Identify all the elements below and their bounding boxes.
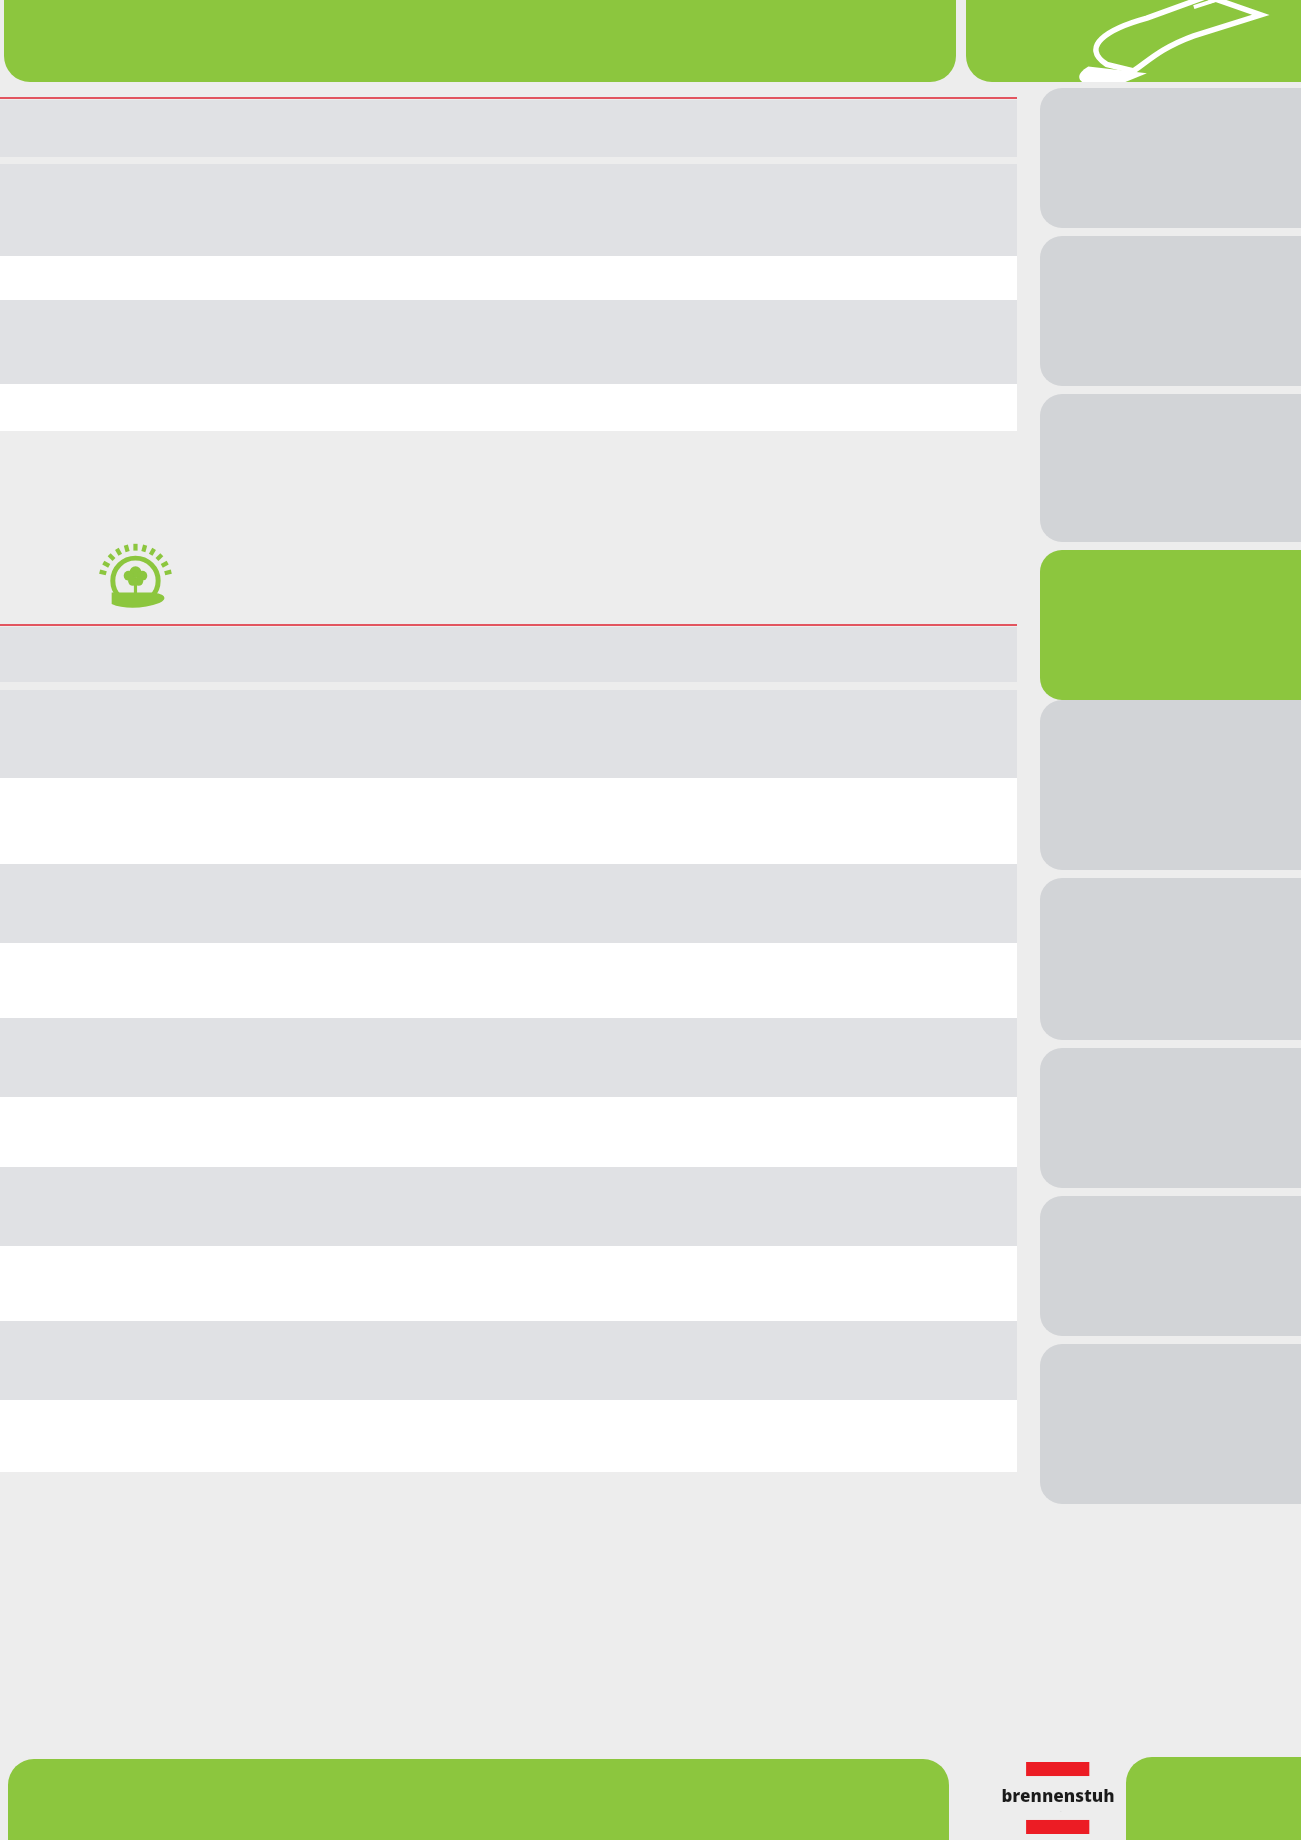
button[interactable] xyxy=(8,1759,949,1840)
button[interactable]: brennenstuhl xyxy=(1000,1762,1116,1834)
staticText: brennenstuhl® xyxy=(1000,1784,1116,1812)
button[interactable]: Save energy xyxy=(96,536,180,616)
button[interactable] xyxy=(4,0,956,82)
button[interactable]: Lamp category xyxy=(966,0,1301,82)
button[interactable] xyxy=(0,256,1017,316)
button[interactable] xyxy=(1126,1757,1301,1840)
button[interactable]: Category tab 4 xyxy=(1040,550,1301,700)
